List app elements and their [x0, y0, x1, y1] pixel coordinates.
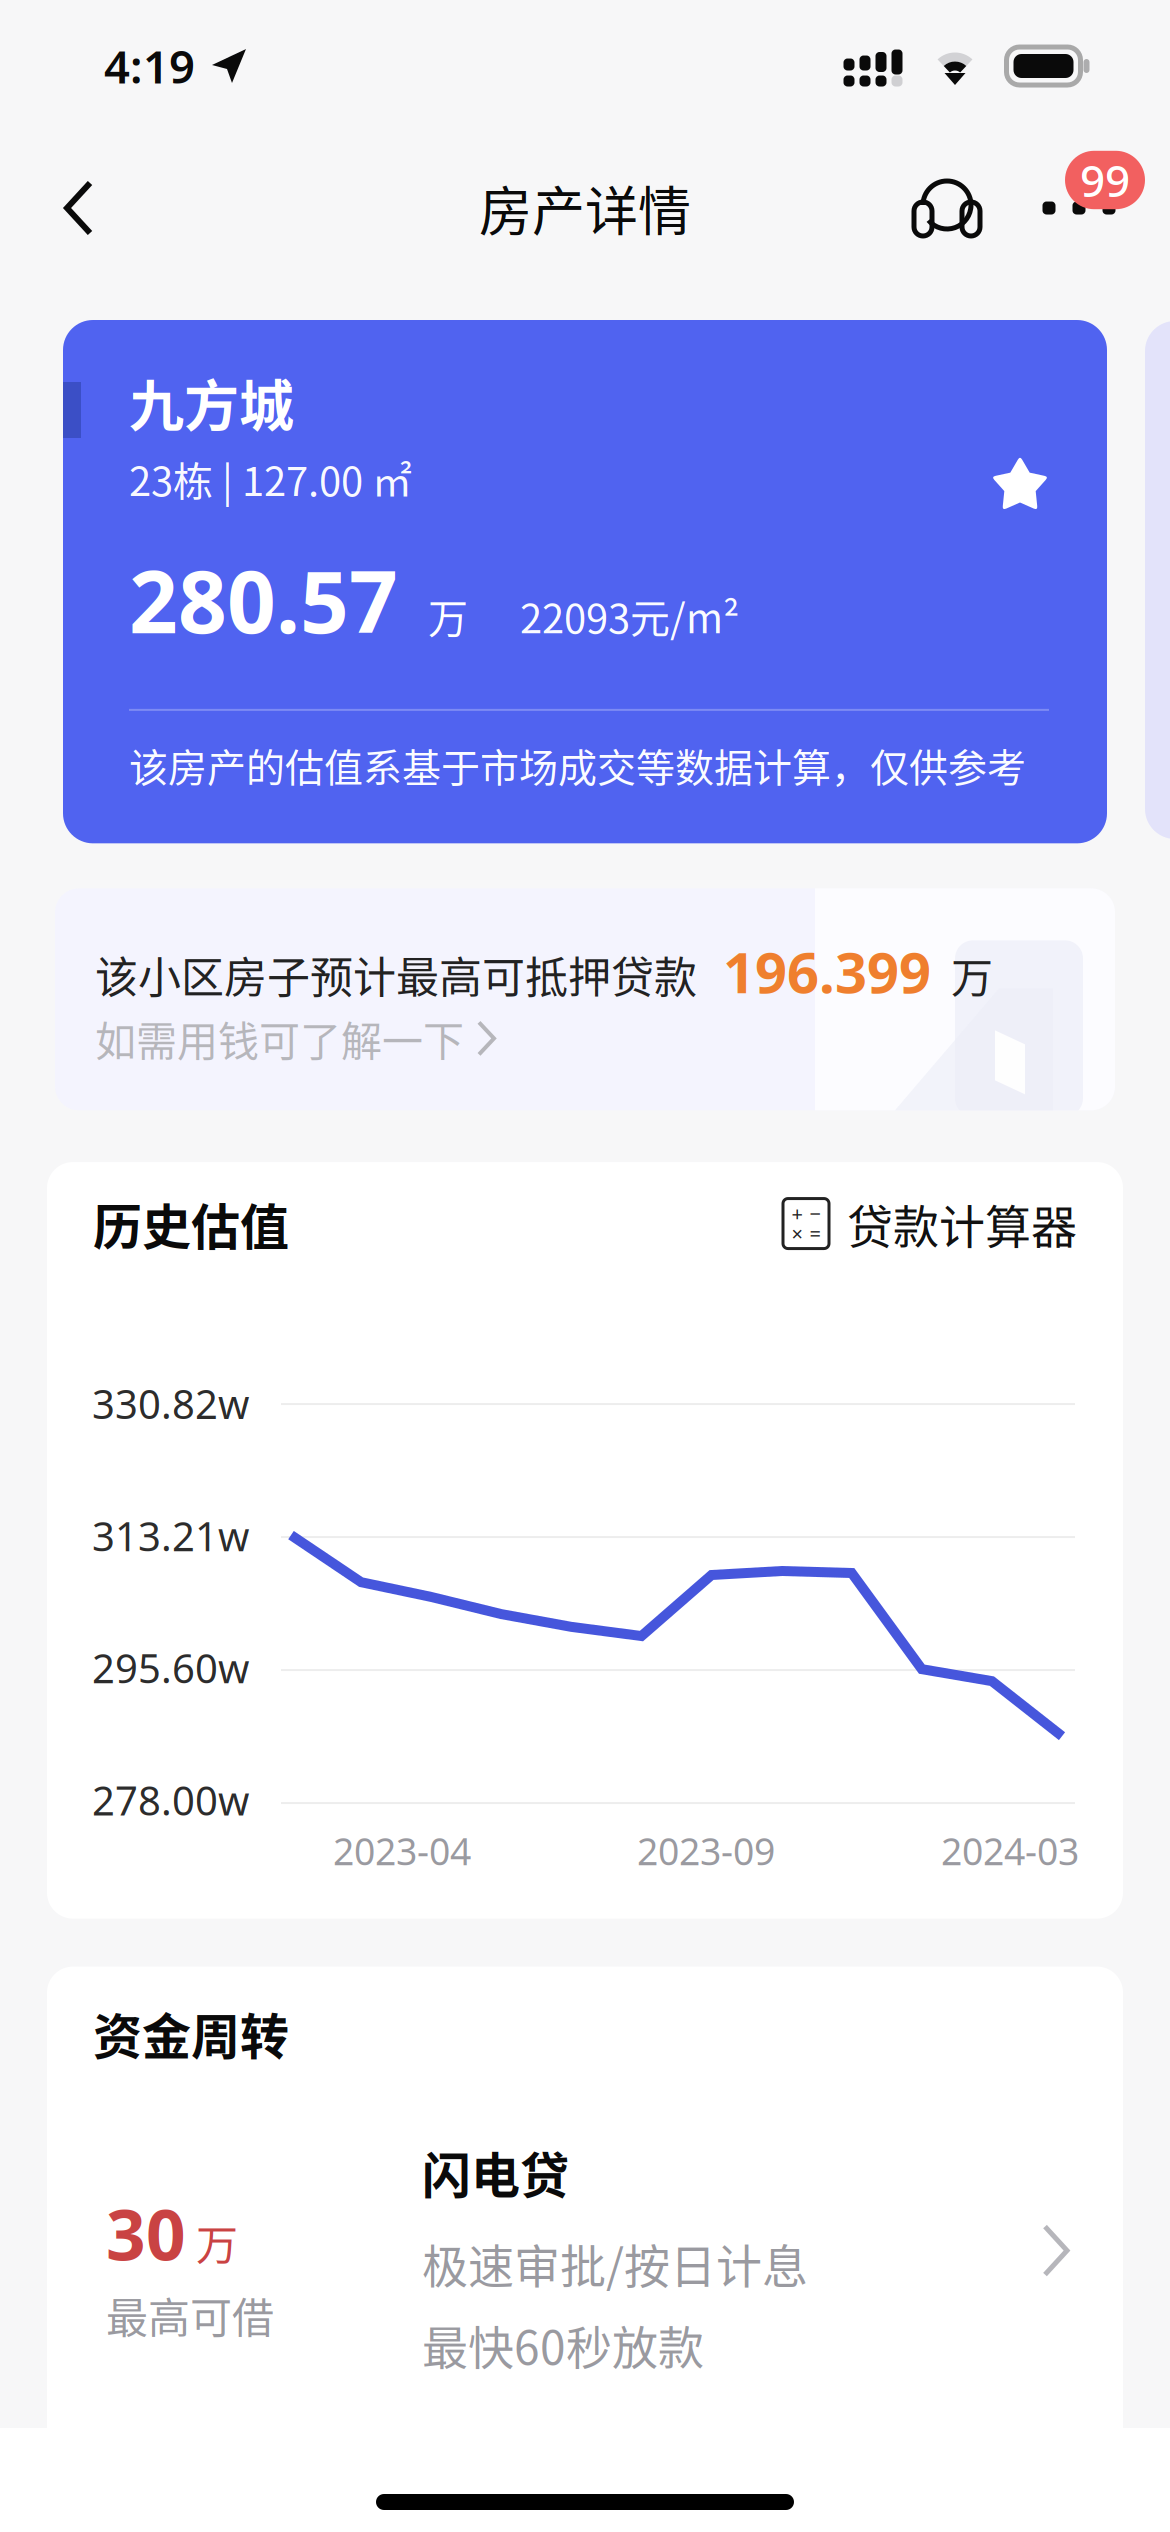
staticText: 万 [196, 2212, 238, 2273]
staticText: 2023-09 [637, 1826, 775, 1876]
staticText: 22093元/m² [520, 587, 739, 645]
staticText: 23栋 | 127.00 ㎡ [129, 450, 412, 507]
staticText: 资金周转 [93, 1998, 289, 2069]
staticText: 最快60秒放款 [422, 2311, 704, 2378]
staticText: 该房产的估值系基于市场成交等数据计算，仅供参考 [129, 737, 1026, 793]
button[interactable]: + [783, 1190, 1077, 1257]
staticText: 最高可借 [106, 2285, 274, 2345]
button[interactable]: 30 [47, 2137, 1123, 2378]
staticText: 278.00w [92, 1773, 249, 1826]
staticText: 295.60w [92, 1641, 249, 1694]
button[interactable]: Favorite [993, 320, 1107, 432]
staticText: 313.21w [92, 1509, 249, 1562]
staticText: 历史估值 [93, 1188, 289, 1259]
button[interactable]: Customer service [894, 155, 1000, 261]
staticText: 九方城 [129, 362, 294, 442]
button[interactable]: Back [36, 150, 120, 266]
staticText: 4:19 [104, 36, 195, 96]
staticText: 该小区房子预计最高可抵押贷款 [95, 943, 697, 1006]
staticText: × [791, 1220, 802, 1247]
button[interactable]: 该小区房子预计最高可抵押贷款 [55, 888, 1115, 1112]
staticText: 贷款计算器 [847, 1190, 1077, 1257]
button[interactable]: More options [1014, 149, 1144, 267]
staticText: 330.82w [92, 1377, 249, 1430]
staticText: 30 [106, 2188, 186, 2280]
staticText: 闪电贷 [422, 2137, 569, 2208]
staticText: 万 [428, 587, 468, 645]
staticText: 如需用钱可了解一下 [95, 1009, 464, 1068]
staticText: = [809, 1220, 820, 1247]
staticText: 196.399 [723, 934, 931, 1009]
staticText: 房产详情 [479, 170, 691, 246]
staticText: 极速审批/按日计息 [422, 2229, 808, 2296]
staticText: − [809, 1200, 820, 1227]
staticText: 280.57 [129, 544, 398, 657]
staticText: 2024-03 [941, 1826, 1079, 1876]
staticText: 99 [1080, 151, 1130, 209]
staticText: + [791, 1200, 802, 1227]
staticText: 2023-04 [333, 1826, 471, 1876]
staticText: 万 [951, 944, 993, 1005]
